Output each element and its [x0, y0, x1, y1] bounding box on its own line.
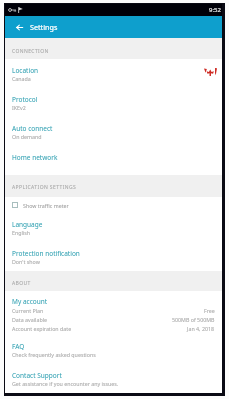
- button[interactable]: Location: [5, 59, 222, 88]
- staticText: Settings: [30, 22, 58, 32]
- staticText: Canada: [12, 75, 31, 82]
- staticText: On demand: [12, 133, 42, 140]
- staticText: Don't show: [12, 258, 40, 265]
- button[interactable]: Home network: [5, 146, 222, 175]
- button[interactable]: Contact Support: [5, 364, 222, 393]
- staticText: Data available: [12, 316, 48, 323]
- staticText: Show traffic meter: [23, 202, 69, 209]
- other: Connected: [18, 7, 23, 13]
- staticText: Account expiration date: [12, 325, 72, 332]
- staticText: 500MB of 500MB: [172, 316, 215, 323]
- staticText: IKEv2: [12, 104, 26, 111]
- button[interactable]: FAQ: [5, 335, 222, 364]
- staticText: Check frequently asked questions: [12, 351, 96, 358]
- staticText: Current Plan: [12, 307, 44, 314]
- button[interactable]: Auto connect: [5, 117, 222, 146]
- staticText: My account: [12, 297, 48, 306]
- button[interactable]: Protocol: [5, 88, 222, 117]
- staticText: Protocol: [12, 95, 38, 104]
- staticText: FAQ: [12, 342, 25, 351]
- staticText: Free: [204, 307, 215, 314]
- staticText: CONNECTION: [12, 48, 49, 55]
- staticText: ABOUT: [12, 280, 31, 287]
- staticText: Protection notification: [12, 249, 80, 258]
- other: VPN key: [9, 8, 16, 12]
- button[interactable]: My account: [5, 291, 222, 335]
- staticText: Location: [12, 66, 39, 75]
- button[interactable]: Protection notification: [5, 242, 222, 271]
- staticText: Home network: [12, 153, 58, 162]
- staticText: Jan 4, 2018: [187, 325, 215, 332]
- button[interactable]: Back: [10, 18, 29, 37]
- staticText: Get assistance if you encounter any issu…: [12, 380, 119, 387]
- staticText: Language: [12, 220, 43, 229]
- button[interactable]: Language: [5, 213, 222, 242]
- staticText: 9:52: [209, 6, 221, 14]
- staticText: Contact Support: [12, 371, 62, 380]
- button[interactable]: Show traffic meter: [5, 197, 222, 213]
- staticText: English: [12, 229, 31, 236]
- staticText: APPLICATION SETTINGS: [12, 184, 77, 191]
- staticText: Auto connect: [12, 124, 53, 133]
